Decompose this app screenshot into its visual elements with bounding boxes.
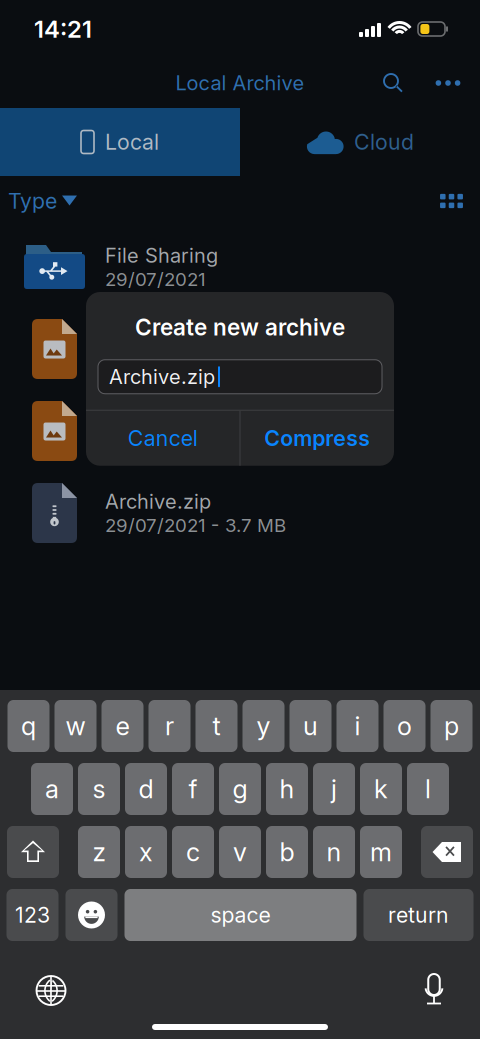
button[interactable]: s xyxy=(78,763,120,815)
staticText: k xyxy=(374,774,388,804)
staticText: return xyxy=(388,902,449,928)
staticText: c xyxy=(186,837,200,867)
staticText: IMG_0002.jpg xyxy=(105,408,237,431)
button[interactable]: q xyxy=(7,700,49,752)
staticText: g xyxy=(232,774,247,804)
button[interactable]: 123 xyxy=(6,889,58,941)
button[interactable]: v xyxy=(219,826,261,878)
button[interactable]: t xyxy=(195,700,237,752)
button[interactable]: b xyxy=(266,826,308,878)
staticText: 29/07/2021 - 1.1 MB xyxy=(105,432,279,454)
button[interactable]: c xyxy=(172,826,214,878)
button[interactable]: Type xyxy=(0,178,76,224)
button[interactable]: g xyxy=(219,763,261,815)
staticText: a xyxy=(45,774,59,804)
button[interactable]: Cloud xyxy=(240,108,480,176)
staticText: e xyxy=(115,711,129,741)
staticText: r xyxy=(165,711,174,741)
staticText: z xyxy=(92,837,105,867)
button[interactable]: r xyxy=(148,700,190,752)
staticText: v xyxy=(233,837,247,867)
staticText: IMG_0001.jpg xyxy=(105,326,233,349)
staticText: Local Archive xyxy=(175,71,304,95)
button[interactable]: f xyxy=(172,763,214,815)
staticText: 123 xyxy=(15,902,50,928)
staticText: 14:21 xyxy=(34,15,92,43)
button[interactable]: w xyxy=(54,700,96,752)
button[interactable]: Shift xyxy=(7,826,59,878)
button[interactable]: Archive.zip xyxy=(0,472,480,554)
button[interactable]: h xyxy=(266,763,308,815)
staticText: o xyxy=(397,711,412,741)
button[interactable]: return xyxy=(363,889,473,941)
button[interactable]: Compress xyxy=(240,411,394,466)
staticText: File Sharing xyxy=(105,244,218,267)
button[interactable]: Local xyxy=(0,108,240,176)
staticText: Local xyxy=(105,129,159,155)
button[interactable]: Dictate xyxy=(410,962,458,1019)
button[interactable]: z xyxy=(78,826,120,878)
button[interactable]: o xyxy=(383,700,425,752)
button[interactable]: e xyxy=(101,700,143,752)
staticText: Type xyxy=(8,188,57,214)
staticText: u xyxy=(303,711,318,741)
staticText: Cancel xyxy=(128,426,198,451)
staticText: i xyxy=(354,711,360,741)
staticText: Compress xyxy=(264,426,370,451)
staticText: h xyxy=(279,774,294,804)
staticText: Cloud xyxy=(354,129,414,155)
button[interactable]: Switch keyboard xyxy=(24,963,78,1017)
button[interactable]: IMG_0002.jpg xyxy=(0,390,480,472)
staticText: l xyxy=(425,774,431,804)
button[interactable]: File Sharing xyxy=(0,226,480,308)
button[interactable]: space xyxy=(124,889,356,941)
staticText: p xyxy=(444,711,459,741)
staticText: 29/07/2021 xyxy=(105,268,206,290)
staticText: w xyxy=(65,711,85,741)
staticText: 29/07/2021 - 3.7 MB xyxy=(105,514,286,536)
button[interactable]: j xyxy=(313,763,355,815)
button[interactable]: k xyxy=(360,763,402,815)
staticText: m xyxy=(370,837,392,867)
button[interactable]: m xyxy=(360,826,402,878)
button[interactable]: u xyxy=(289,700,331,752)
staticText: f xyxy=(188,774,197,804)
staticText: n xyxy=(326,837,341,867)
button[interactable]: x xyxy=(125,826,167,878)
button[interactable]: d xyxy=(125,763,167,815)
button[interactable]: p xyxy=(430,700,472,752)
button[interactable]: Grid view xyxy=(440,183,480,219)
staticText: j xyxy=(331,774,337,804)
staticText: space xyxy=(210,902,270,928)
button[interactable]: l xyxy=(407,763,449,815)
staticText: y xyxy=(256,711,270,741)
staticText: q xyxy=(21,711,36,741)
staticText: Archive.zip xyxy=(109,365,215,388)
button[interactable]: Search xyxy=(373,63,413,103)
button[interactable]: More options xyxy=(428,63,468,103)
button[interactable]: n xyxy=(313,826,355,878)
button[interactable]: Delete xyxy=(421,826,473,878)
button[interactable]: a xyxy=(31,763,73,815)
staticText: x xyxy=(139,837,153,867)
staticText: d xyxy=(138,774,153,804)
button[interactable]: Cancel xyxy=(86,411,239,466)
button[interactable]: IMG_0001.jpg xyxy=(0,308,480,390)
staticText: Archive.zip xyxy=(105,490,211,513)
staticText: 29/07/2021 - 1.2 MB xyxy=(105,350,283,372)
staticText: s xyxy=(92,774,105,804)
staticText: t xyxy=(212,711,220,741)
button[interactable]: i xyxy=(336,700,378,752)
button[interactable]: Emoji keyboard xyxy=(65,889,117,941)
button[interactable]: y xyxy=(242,700,284,752)
staticText: b xyxy=(279,837,294,867)
staticText: Create new archive xyxy=(135,314,345,341)
